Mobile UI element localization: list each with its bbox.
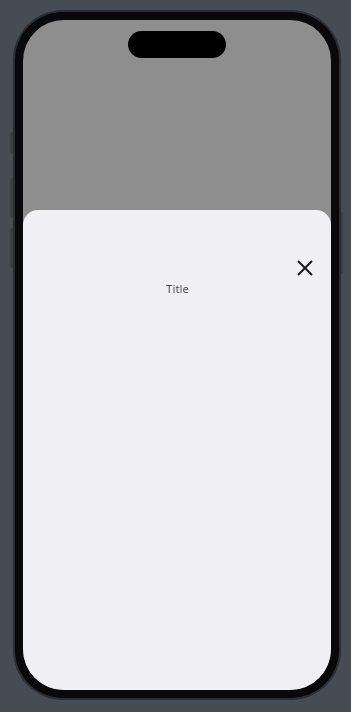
button[interactable]: Title	[23, 210, 331, 690]
staticText: Title	[166, 281, 189, 297]
button[interactable]: Close	[285, 248, 325, 288]
